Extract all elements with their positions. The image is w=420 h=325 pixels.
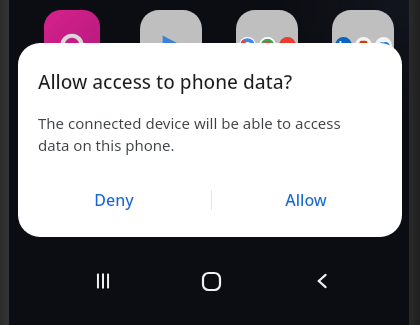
button[interactable]: Allow: [210, 178, 402, 222]
button[interactable]: Deny: [18, 178, 210, 222]
staticText: Deny: [94, 189, 134, 211]
button[interactable]: Instagram: [44, 10, 100, 66]
button[interactable]: Play Store: [140, 10, 202, 66]
button[interactable]: Home: [187, 257, 235, 305]
staticText: Allow access to phone data?: [38, 69, 293, 95]
button[interactable]: Back: [298, 257, 346, 305]
staticText: Allow: [285, 189, 327, 211]
button[interactable]: Google folder: [236, 10, 298, 66]
staticText: The connected device will be able to acc…: [38, 113, 341, 156]
button[interactable]: Recents: [79, 257, 127, 305]
button[interactable]: Work folder: [332, 10, 394, 66]
